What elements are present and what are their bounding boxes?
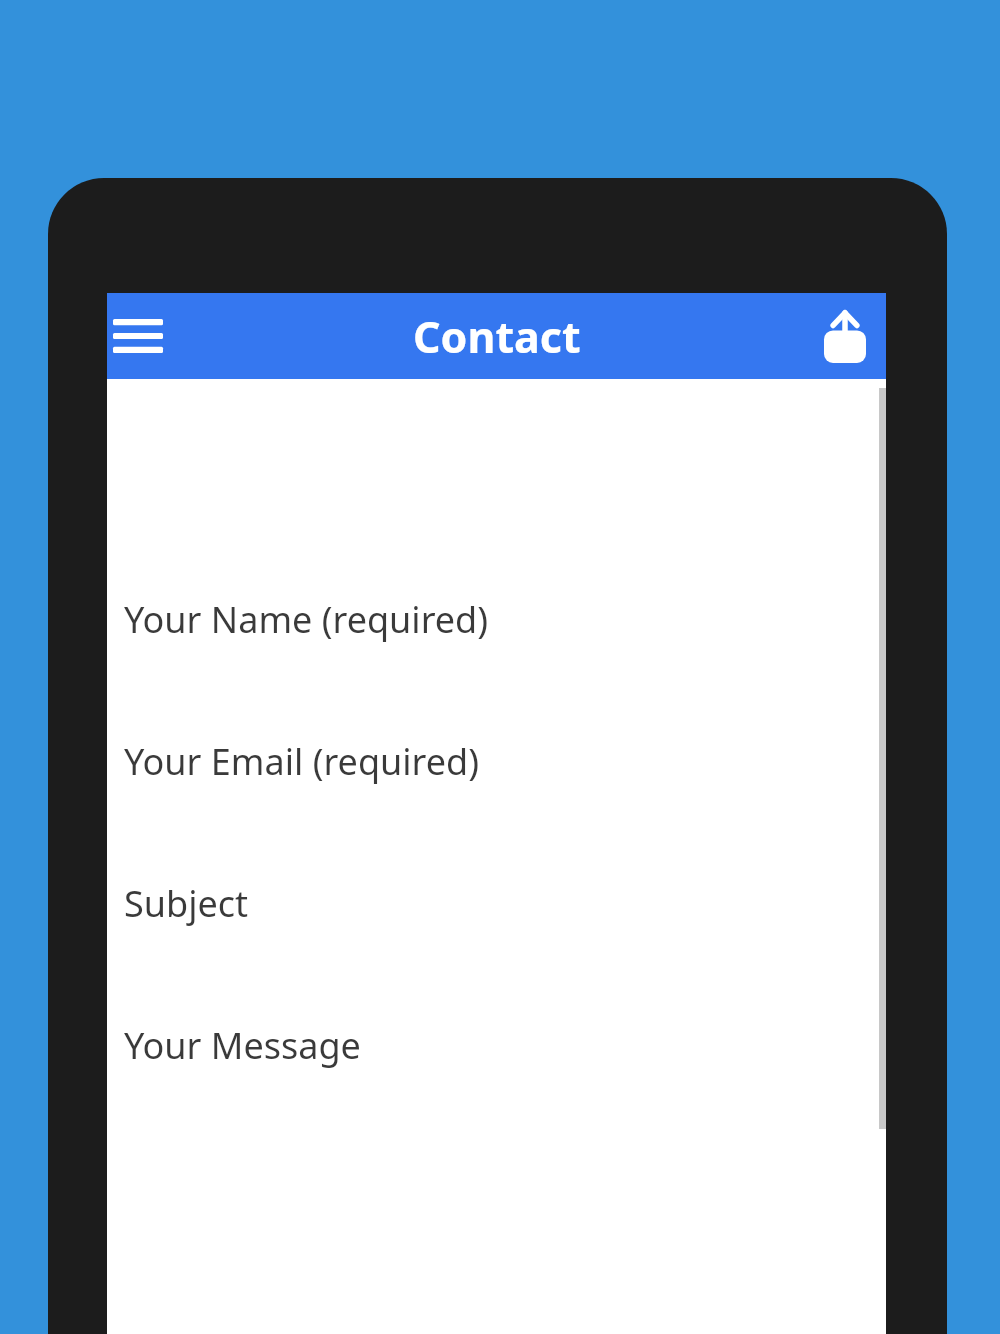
staticText: Your Message [124, 1021, 361, 1070]
button[interactable]: Open navigation menu [109, 307, 167, 365]
staticText: Your Name (required) [124, 595, 489, 644]
staticText: Subject [124, 879, 249, 928]
button[interactable]: Share [814, 305, 876, 367]
staticText: Your Email (required) [124, 737, 479, 786]
button[interactable]: Your Email (required) [124, 733, 886, 789]
button[interactable]: Subject [124, 875, 886, 931]
button[interactable]: Your Message [124, 1017, 886, 1073]
button[interactable]: Your Name (required) [124, 591, 886, 647]
staticText: Contact [413, 307, 581, 366]
